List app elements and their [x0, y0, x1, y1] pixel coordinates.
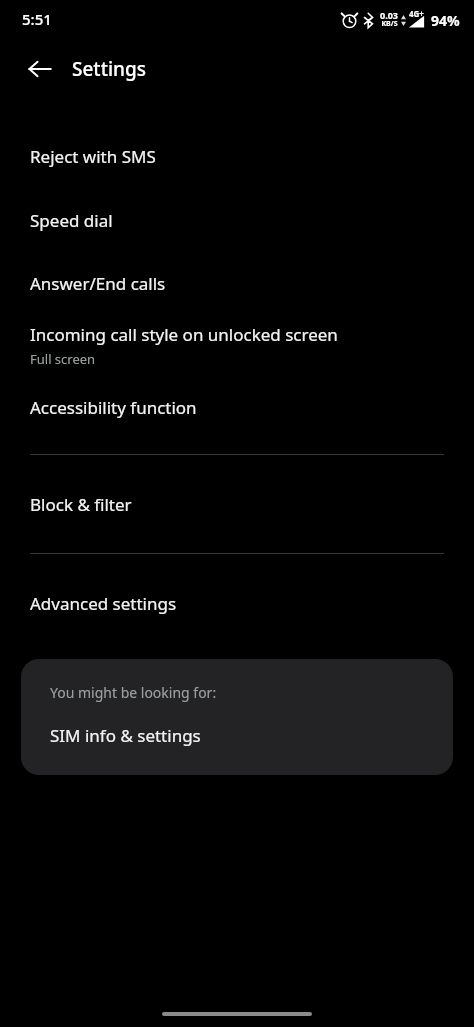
- staticText: SIM info & settings: [50, 724, 201, 747]
- button[interactable]: Advanced settings: [0, 554, 474, 652]
- staticText: Accessibility function: [30, 396, 197, 419]
- button[interactable]: Accessibility function: [0, 376, 474, 438]
- button[interactable]: Back: [16, 45, 64, 93]
- staticText: Settings: [72, 56, 146, 82]
- button[interactable]: Block & filter: [0, 455, 474, 553]
- staticText: Incoming call style on unlocked screen: [30, 323, 338, 346]
- staticText: Block & filter: [30, 493, 132, 516]
- button[interactable]: Reject with SMS: [0, 124, 474, 188]
- button[interactable]: Speed dial: [0, 188, 474, 252]
- staticText: Speed dial: [30, 209, 113, 232]
- staticText: 94%: [431, 11, 460, 30]
- staticText: 5:51: [22, 9, 52, 29]
- staticText: KB/S: [381, 19, 398, 29]
- staticText: 0.03: [380, 9, 398, 21]
- button[interactable]: Incoming call style on unlocked screen: [0, 314, 474, 376]
- button[interactable]: You might be looking for:: [21, 659, 453, 775]
- staticText: 4G+: [409, 8, 424, 19]
- staticText: Reject with SMS: [30, 145, 156, 168]
- staticText: Advanced settings: [30, 592, 177, 615]
- staticText: Answer/End calls: [30, 272, 166, 295]
- staticText: You might be looking for:: [50, 683, 217, 702]
- button[interactable]: Answer/End calls: [0, 252, 474, 314]
- staticText: Full screen: [30, 350, 96, 368]
